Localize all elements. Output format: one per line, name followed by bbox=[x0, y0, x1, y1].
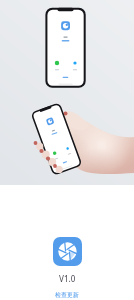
staticText: 检查更新 bbox=[55, 291, 79, 299]
button[interactable]: App icon bbox=[53, 237, 82, 266]
staticText: V1.0 bbox=[59, 273, 76, 284]
button[interactable]: 检查更新 bbox=[55, 291, 79, 299]
